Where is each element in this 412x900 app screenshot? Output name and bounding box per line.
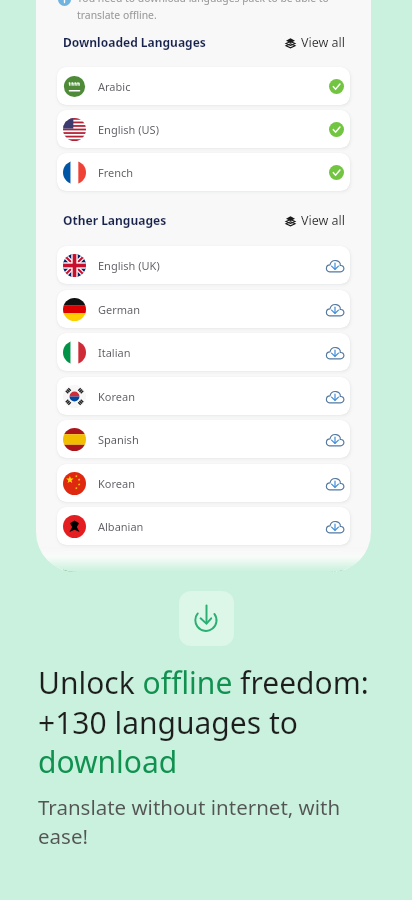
staticText: English (US): [98, 122, 159, 137]
button[interactable]: View all: [286, 34, 346, 51]
staticText: You need to download languages pack to b…: [77, 0, 333, 22]
button[interactable]: Spanish: [57, 420, 350, 458]
staticText: Other Languages: [63, 212, 167, 228]
button[interactable]: Korean: [57, 377, 350, 415]
button[interactable]: English (US): [57, 110, 350, 148]
staticText: Albanian: [98, 519, 144, 534]
staticText: French: [98, 165, 134, 180]
button[interactable]: Albanian: [57, 507, 350, 545]
staticText: Korean: [98, 389, 135, 404]
staticText: English (UK): [98, 258, 160, 273]
staticText: View all: [301, 34, 346, 51]
button[interactable]: Korean: [57, 464, 350, 502]
staticText: Korean: [98, 476, 135, 491]
button[interactable]: Italian: [57, 333, 350, 371]
staticText: German: [98, 302, 141, 317]
staticText: Unlock offline freedom: +130 languages t…: [38, 662, 380, 782]
staticText: Spanish: [98, 432, 139, 447]
staticText: Downloaded Languages: [63, 34, 206, 50]
button[interactable]: View all: [286, 212, 346, 229]
staticText: Arabic: [98, 79, 131, 94]
button[interactable]: French: [57, 153, 350, 191]
button[interactable]: German: [57, 290, 350, 328]
button[interactable]: Portuguese: [57, 551, 350, 572]
staticText: View all: [301, 212, 346, 229]
button[interactable]: Arabic: [57, 67, 350, 105]
button[interactable]: Download: [179, 591, 234, 646]
staticText: Portuguese: [98, 563, 158, 572]
button[interactable]: English (UK): [57, 246, 350, 284]
staticText: Translate without internet, with ease!: [38, 793, 358, 850]
staticText: Italian: [98, 345, 131, 360]
